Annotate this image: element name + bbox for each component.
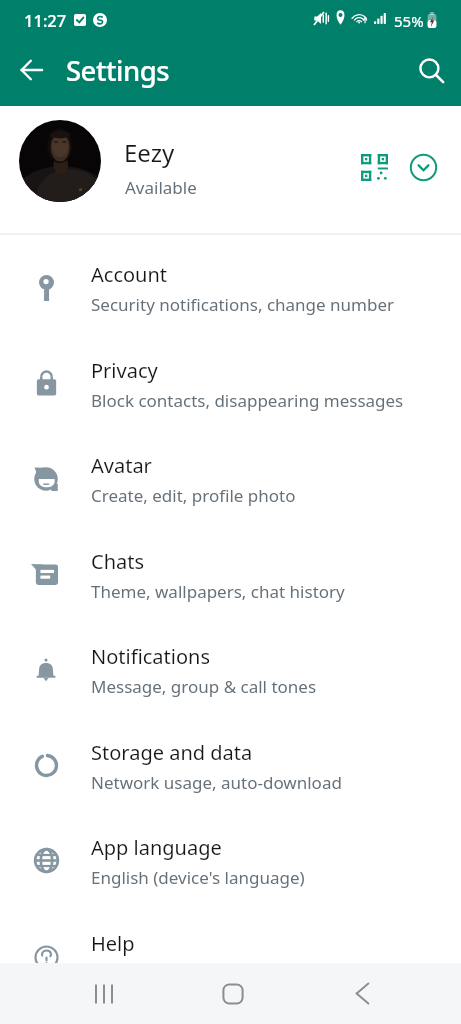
button[interactable]: Recent apps: [78, 963, 130, 1024]
staticText: 55%: [394, 11, 424, 31]
staticText: Privacy: [91, 357, 158, 384]
staticText: Account: [91, 261, 168, 288]
staticText: App language: [91, 834, 222, 861]
staticText: Notifications: [91, 643, 210, 670]
button[interactable]: Help: [0, 918, 461, 1013]
button[interactable]: App language: [0, 822, 461, 917]
staticText: Message, group & call tones: [91, 675, 317, 698]
staticText: English (device's language): [91, 866, 305, 889]
staticText: Theme, wallpapers, chat history: [91, 580, 345, 603]
staticText: Block contacts, disappearing messages: [91, 389, 404, 412]
button[interactable]: Avatar: [0, 440, 461, 535]
staticText: 11:27: [24, 9, 67, 31]
staticText: Available: [125, 176, 197, 199]
button[interactable]: Home: [207, 963, 259, 1024]
staticText: Eezy: [124, 136, 175, 169]
staticText: Network usage, auto-download: [91, 771, 342, 794]
button[interactable]: Storage and data: [0, 727, 461, 822]
button[interactable]: QR code: [352, 145, 396, 189]
staticText: Storage and data: [91, 739, 253, 766]
staticText: Help: [91, 930, 135, 957]
staticText: Chats: [91, 548, 145, 575]
button[interactable]: Privacy: [0, 345, 461, 440]
staticText: Create, edit, profile photo: [91, 484, 296, 507]
button[interactable]: Back: [336, 963, 388, 1024]
staticText: Avatar: [91, 452, 152, 479]
staticText: Settings: [66, 52, 170, 89]
button[interactable]: Chats: [0, 536, 461, 631]
button[interactable]: Expand profile: [401, 145, 445, 189]
button[interactable]: Notifications: [0, 631, 461, 726]
button[interactable]: Search: [410, 49, 454, 93]
button[interactable]: [0, 105, 461, 233]
button[interactable]: Account: [0, 249, 461, 344]
staticText: Security notifications, change number: [91, 293, 395, 316]
button[interactable]: Back: [9, 48, 53, 92]
